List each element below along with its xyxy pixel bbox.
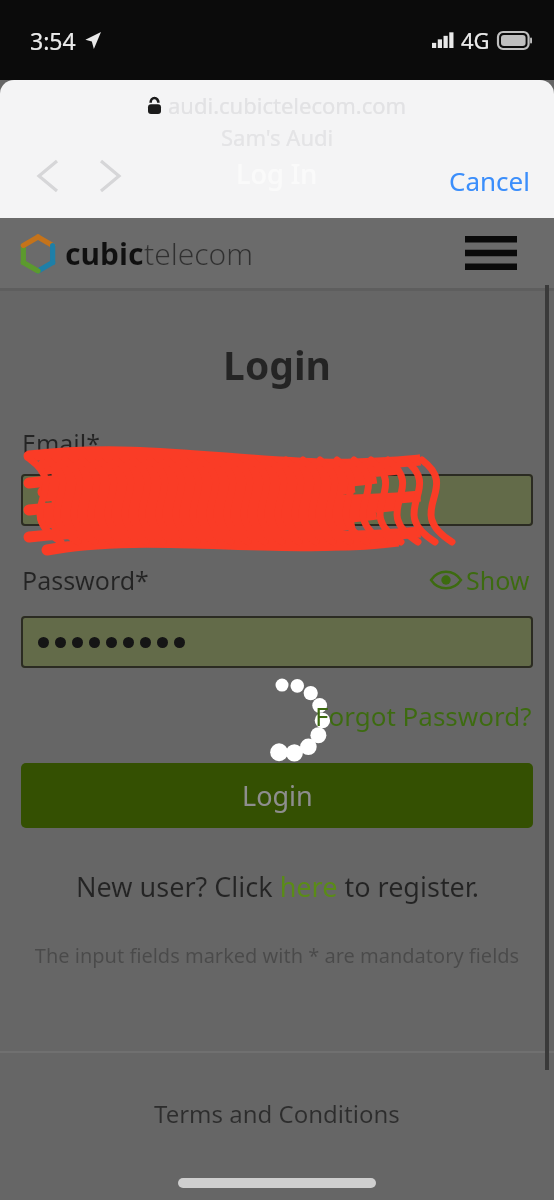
staticText: 3:54 — [30, 25, 76, 56]
button[interactable]: Menu — [464, 226, 518, 280]
staticText: Show — [466, 563, 530, 597]
staticText: Login — [0, 338, 554, 391]
staticText: Login — [242, 777, 313, 814]
button[interactable]: Forgot Password? — [311, 694, 536, 737]
button[interactable] — [21, 474, 533, 526]
staticText: Email* — [22, 426, 100, 460]
staticText: audi.cubictelecom.com — [168, 90, 407, 120]
button[interactable]: Cancel — [439, 155, 540, 206]
button[interactable]: Show — [429, 559, 532, 601]
button[interactable]: Back — [24, 152, 72, 200]
button[interactable]: Forward — [86, 152, 134, 200]
staticText: telecom — [144, 233, 254, 274]
staticText: 4G — [461, 25, 490, 55]
staticText: Forgot Password? — [315, 698, 532, 733]
staticText: Terms and Conditions — [154, 1097, 400, 1130]
staticText: New user? Click here to register. — [76, 868, 479, 905]
staticText: Cancel — [449, 163, 530, 198]
button[interactable]: New user? Click here to register. — [0, 868, 554, 905]
button[interactable]: Terms and Conditions — [0, 1097, 554, 1130]
staticText: The input fields marked with * are manda… — [0, 942, 554, 969]
button[interactable] — [21, 616, 533, 668]
staticText: cubic — [65, 233, 144, 274]
staticText: Sam's Audi — [221, 122, 334, 152]
button[interactable]: Login — [21, 763, 533, 828]
staticText: Password* — [22, 563, 149, 597]
